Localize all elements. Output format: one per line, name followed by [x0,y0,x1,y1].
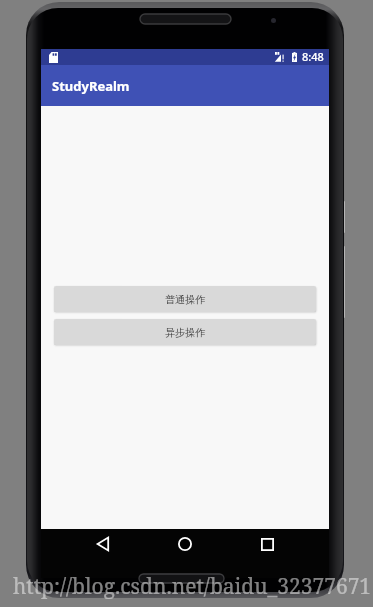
button[interactable]: 普通操作 [54,286,316,312]
staticText: http://blog.csdn.net/baidu_32377671 [13,572,372,601]
staticText: 8:48 [302,49,324,64]
button[interactable]: 异步操作 [54,319,316,345]
staticText: StudyRealm [52,77,130,95]
button[interactable]: Back [83,524,123,564]
button[interactable]: Recent apps [247,524,287,564]
button[interactable]: Home [165,524,205,564]
staticText: 普通操作 [165,293,205,306]
staticText: 异步操作 [165,326,205,339]
